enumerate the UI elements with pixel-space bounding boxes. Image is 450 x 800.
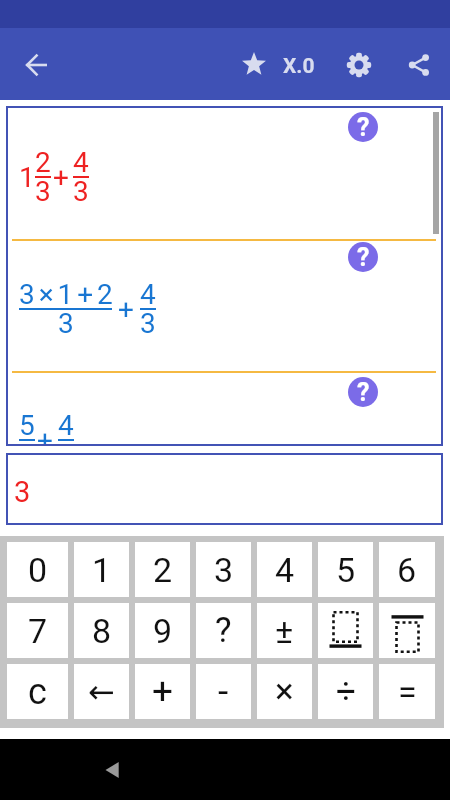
staticText: 3 xyxy=(58,307,73,340)
button[interactable]: 8 xyxy=(74,603,129,658)
staticText: ? xyxy=(357,113,370,142)
staticText: 3 xyxy=(14,475,31,509)
staticText: ? xyxy=(357,243,370,272)
staticText: 6 xyxy=(397,550,417,590)
staticText: 4 xyxy=(275,550,295,590)
button[interactable]: 9 xyxy=(135,603,190,658)
staticText: 4 xyxy=(140,278,156,311)
staticText: 3 xyxy=(19,438,35,446)
button[interactable] xyxy=(346,52,372,78)
button[interactable]: + xyxy=(135,664,190,719)
button[interactable]: ? xyxy=(348,377,378,407)
button[interactable] xyxy=(25,53,49,77)
button[interactable]: = xyxy=(379,664,435,719)
staticText: ? xyxy=(215,610,232,651)
button[interactable]: 3 xyxy=(196,542,251,597)
button[interactable]: ÷ xyxy=(318,664,373,719)
button[interactable]: × xyxy=(257,664,312,719)
staticText: 3 × 1 + 2 xyxy=(19,278,112,311)
button[interactable] xyxy=(98,755,126,783)
button[interactable]: ? xyxy=(196,603,251,658)
button[interactable] xyxy=(379,603,435,658)
staticText: ÷ xyxy=(336,671,356,712)
staticText: 3 xyxy=(35,175,51,208)
staticText: 3 xyxy=(58,438,74,446)
button[interactable] xyxy=(241,52,267,78)
button[interactable]: c xyxy=(7,664,68,719)
button[interactable]: 4 xyxy=(257,542,312,597)
staticText: 2 xyxy=(35,146,51,179)
staticText: + xyxy=(37,424,53,446)
button[interactable]: ← xyxy=(74,664,129,719)
button[interactable] xyxy=(318,603,373,658)
staticText: 5 xyxy=(19,409,35,442)
staticText: 7 xyxy=(28,611,48,651)
staticText: 8 xyxy=(92,611,112,651)
button[interactable]: X.0 xyxy=(283,54,315,79)
button[interactable]: 0 xyxy=(7,542,68,597)
staticText: 4 xyxy=(73,146,89,179)
staticText: 1 xyxy=(92,550,112,590)
staticText: 0 xyxy=(28,550,48,590)
staticText: ← xyxy=(88,673,115,710)
staticText: 3 xyxy=(214,550,234,590)
staticText: - xyxy=(218,670,229,713)
staticText: 4 xyxy=(58,409,74,442)
staticText: + xyxy=(118,293,134,326)
button[interactable] xyxy=(407,53,431,77)
staticText: ± xyxy=(275,611,294,651)
button[interactable]: - xyxy=(196,664,251,719)
staticText: 9 xyxy=(153,611,173,651)
staticText: 3 xyxy=(140,307,156,340)
button[interactable]: 7 xyxy=(7,603,68,658)
staticText: = xyxy=(398,672,417,712)
button[interactable]: 6 xyxy=(379,542,435,597)
staticText: 1 xyxy=(19,161,35,194)
button[interactable]: 1 xyxy=(74,542,129,597)
staticText: × xyxy=(275,671,294,712)
staticText: 5 xyxy=(336,550,356,590)
staticText: 2 xyxy=(153,550,173,590)
staticText: + xyxy=(53,161,69,194)
button[interactable]: 2 xyxy=(135,542,190,597)
button[interactable]: ± xyxy=(257,603,312,658)
button[interactable]: ? xyxy=(348,242,378,272)
staticText: c xyxy=(28,671,47,713)
button[interactable]: 5 xyxy=(318,542,373,597)
staticText: + xyxy=(152,670,173,713)
button[interactable]: 3 xyxy=(6,453,443,525)
staticText: 3 xyxy=(73,175,89,208)
staticText: ? xyxy=(357,378,370,407)
button[interactable]: ? xyxy=(348,112,378,142)
